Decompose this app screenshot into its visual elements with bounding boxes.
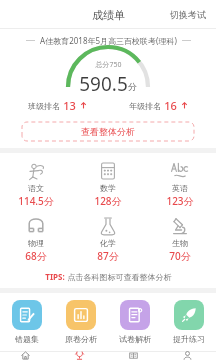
staticText: 查看整体分析	[81, 126, 135, 137]
button[interactable]: 语文	[0, 159, 72, 210]
staticText: 化学	[100, 238, 116, 248]
staticText: 分	[128, 81, 137, 92]
staticText: 错题集	[15, 334, 39, 344]
button[interactable]: 查看整体分析	[22, 122, 194, 141]
staticText: 生物	[172, 238, 188, 248]
button[interactable]: 数学	[72, 159, 144, 210]
staticText: 语文	[28, 183, 44, 193]
staticText: 物理	[28, 238, 44, 248]
button[interactable]: 英语	[144, 159, 216, 210]
staticText: 提升练习	[173, 334, 205, 344]
staticText: 总分750	[95, 60, 122, 70]
staticText: A佳教育2018年5月高三百校联考(理科)	[40, 35, 177, 46]
button[interactable]: 试卷解析	[108, 300, 162, 344]
button[interactable]: 个人	[162, 351, 216, 360]
button[interactable]: 班级排名	[24, 96, 91, 115]
button[interactable]: 物理	[0, 214, 72, 265]
button[interactable]: 生物	[144, 214, 216, 265]
staticText: 切换考试	[170, 9, 206, 20]
staticText: 英语	[172, 183, 188, 193]
button[interactable]: 原卷分析	[54, 300, 108, 344]
button[interactable]: 佳绩宝	[54, 351, 108, 360]
button[interactable]: 首页	[0, 351, 54, 360]
button[interactable]: A佳课堂	[108, 351, 162, 360]
staticText: 68分	[25, 249, 47, 263]
staticText: 年级排名	[129, 101, 161, 111]
button[interactable]: 年级排名	[125, 96, 192, 115]
staticText: 87分	[97, 249, 119, 263]
staticText: 试卷解析	[119, 334, 151, 344]
staticText: 点击各科图标可查看整体分析	[65, 271, 172, 282]
staticText: TIPS:	[45, 271, 65, 282]
button[interactable]: 切换考试	[160, 3, 216, 26]
staticText: 114.5分	[18, 194, 54, 208]
staticText: 成绩单	[92, 8, 125, 22]
staticText: 590.5	[79, 71, 128, 94]
staticText: 123分	[166, 194, 194, 208]
staticText: 数学	[100, 183, 116, 193]
staticText: 13	[63, 98, 76, 113]
button[interactable]: 提升练习	[162, 300, 216, 344]
button[interactable]: 错题集	[0, 300, 54, 344]
staticText: 70分	[169, 249, 191, 263]
staticText: 班级排名	[28, 101, 60, 111]
staticText: 128分	[94, 194, 122, 208]
staticText: 16	[164, 98, 177, 113]
button[interactable]: 化学	[72, 214, 144, 265]
staticText: 原卷分析	[65, 334, 97, 344]
